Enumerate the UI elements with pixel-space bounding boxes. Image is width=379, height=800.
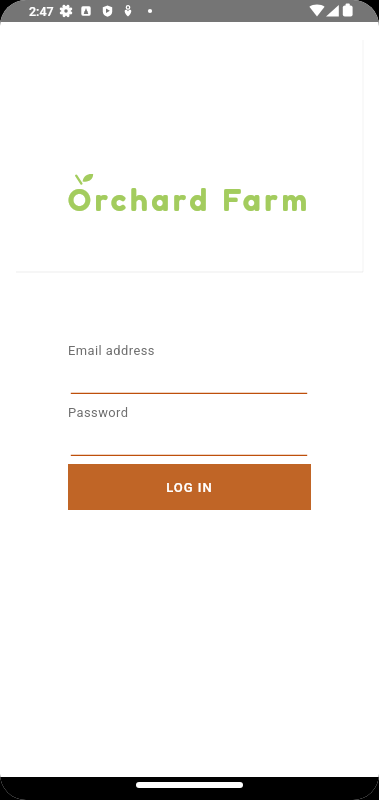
staticText: 2:47 <box>29 4 54 19</box>
button[interactable]: Email address <box>68 340 311 396</box>
staticText: Email address <box>68 343 155 358</box>
button[interactable]: Password <box>68 402 311 458</box>
staticText: LOG IN <box>166 480 213 495</box>
staticText: Orchard Farm <box>68 180 311 218</box>
button[interactable]: LOG IN <box>68 464 311 510</box>
staticText: Password <box>68 405 129 420</box>
